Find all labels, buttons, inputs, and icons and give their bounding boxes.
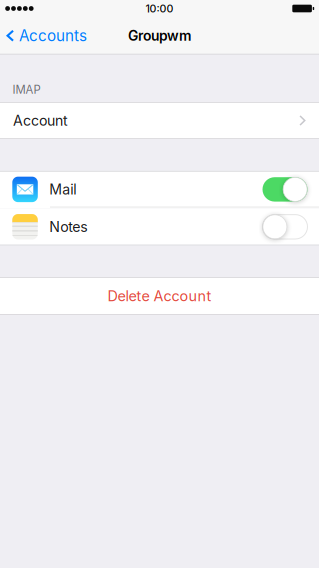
staticText: IMAP <box>12 83 40 97</box>
button[interactable]: Mail <box>0 171 319 208</box>
button[interactable]: Delete Account <box>0 277 319 315</box>
staticText: 10:00 <box>145 2 173 15</box>
button[interactable]: Account <box>0 102 319 139</box>
staticText: Notes <box>49 218 87 235</box>
staticText: Accounts <box>19 26 87 45</box>
button[interactable]: Notes <box>0 208 319 245</box>
button[interactable]: Accounts <box>0 17 96 54</box>
staticText: Mail <box>49 181 76 198</box>
staticText: Delete Account <box>107 287 211 305</box>
staticText: Groupwm <box>128 27 191 44</box>
staticText: Account <box>13 112 68 129</box>
